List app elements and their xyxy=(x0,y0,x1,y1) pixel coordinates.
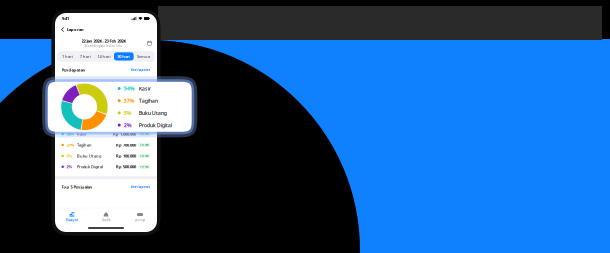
button[interactable]: 7 hari xyxy=(76,52,94,60)
button[interactable]: 1 hari xyxy=(58,52,76,60)
staticText: Tagihan xyxy=(139,97,158,104)
staticText: Semua xyxy=(137,54,150,59)
staticText: Grafik xyxy=(102,218,110,222)
staticText: 10 Trx xyxy=(140,154,149,158)
staticText: Rp 500.000 xyxy=(116,164,136,169)
staticText: 1 hari xyxy=(62,54,73,59)
staticText: Buku Utang xyxy=(77,153,101,158)
staticText: dibandingkan bulan lalu xyxy=(84,44,122,48)
staticText: Produk Digital xyxy=(139,122,172,129)
staticText: 10 Trx xyxy=(140,143,149,147)
staticText: Buku Utang xyxy=(139,109,167,116)
staticText: 2% xyxy=(124,122,132,129)
button[interactable]: 30 hari xyxy=(114,52,134,60)
button[interactable]: Semua xyxy=(134,52,153,60)
staticText: Produk Digital xyxy=(77,164,103,169)
staticText: Lihat Laporan xyxy=(130,185,150,189)
staticText: Kasir xyxy=(139,85,151,92)
button[interactable]: Lihat Laporan xyxy=(130,185,150,189)
staticText: 9:41 xyxy=(62,16,69,21)
staticText: 37% xyxy=(124,97,135,104)
staticText: 5% xyxy=(124,109,132,116)
staticText: 5% xyxy=(66,153,72,158)
button[interactable]: 14 hari xyxy=(94,52,114,60)
staticText: 22 Jan 2024 - 23 Feb 2024 xyxy=(81,38,125,44)
staticText: 2% xyxy=(66,164,72,169)
staticText: 10 Trx xyxy=(140,165,149,168)
button[interactable]: Lihat Laporan xyxy=(130,68,150,72)
staticText: 14 hari xyxy=(97,54,110,59)
staticText: 7 hari xyxy=(80,54,91,59)
staticText: Rp 700.000 xyxy=(116,142,136,148)
staticText: Riwayat xyxy=(66,218,78,222)
button[interactable]: Lainnya xyxy=(123,212,157,222)
staticText: 37% xyxy=(66,142,74,148)
staticText: Kasir xyxy=(77,131,87,137)
button[interactable]: Pilih tanggal xyxy=(147,40,152,45)
button[interactable]: Laporan xyxy=(55,24,157,35)
staticText: Rp 100.000 xyxy=(116,153,136,158)
staticText: Rp 1.000.000 xyxy=(113,131,136,137)
button[interactable]: Riwayat xyxy=(55,212,89,222)
staticText: Pendapatan xyxy=(61,67,85,73)
staticText: Lainnya xyxy=(134,218,145,222)
staticText: 30 hari xyxy=(117,54,130,59)
staticText: Tagihan xyxy=(77,142,92,148)
staticText: Laporan xyxy=(67,27,84,32)
staticText: Lihat Laporan xyxy=(130,68,150,72)
staticText: 54% xyxy=(124,85,135,92)
staticText: 54% xyxy=(66,131,74,137)
staticText: 10 Trx xyxy=(140,132,149,136)
button[interactable]: Grafik xyxy=(89,212,123,222)
staticText: Top 5 Penjualan xyxy=(61,184,92,189)
